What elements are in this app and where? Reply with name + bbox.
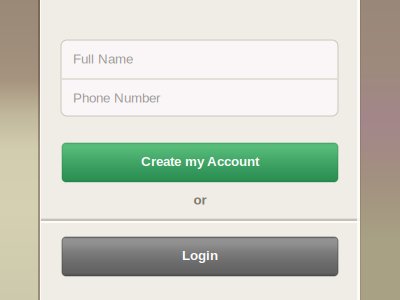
staticText: or [193, 193, 206, 207]
button[interactable]: Phone Number [61, 80, 338, 116]
staticText: Phone Number [73, 91, 160, 105]
button[interactable]: Create my Account [62, 143, 338, 182]
staticText: Login [182, 248, 218, 263]
staticText: Full Name [73, 52, 133, 66]
staticText: Create my Account [141, 154, 259, 169]
button[interactable]: Login [62, 237, 338, 276]
button[interactable]: Full Name [61, 40, 338, 78]
